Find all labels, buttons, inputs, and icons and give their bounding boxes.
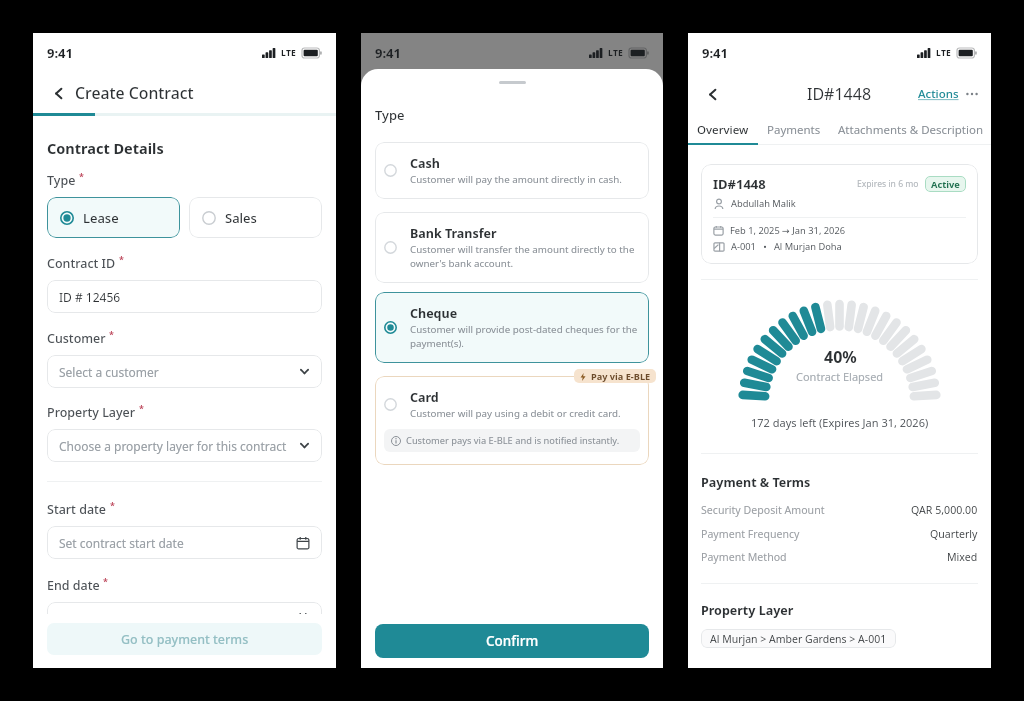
staticText: *: [109, 328, 114, 340]
staticText: *: [119, 253, 124, 265]
staticText: Property Layer: [701, 602, 794, 619]
staticText: 40%: [824, 346, 857, 368]
staticText: Payment & Terms: [701, 474, 811, 491]
staticText: Al Murjan > Amber Gardens > A-001: [710, 632, 887, 646]
button[interactable]: Choose a property layer for this contrac…: [47, 429, 322, 462]
button[interactable]: Actions: [917, 86, 960, 102]
staticText: Active: [931, 178, 960, 191]
staticText: Card: [410, 389, 439, 406]
staticText: 9:41: [702, 44, 728, 62]
staticText: Customer pays via E-BLE and is notified …: [406, 434, 620, 447]
staticText: Expires in 6 mo: [857, 178, 919, 190]
staticText: Set contract start date: [59, 535, 184, 551]
button[interactable]: Go to payment terms: [47, 623, 322, 655]
staticText: ID # 12456: [59, 289, 121, 305]
staticText: Sales: [225, 209, 257, 227]
button[interactable]: Payments: [758, 114, 830, 145]
staticText: Contract Elapsed: [796, 369, 884, 384]
staticText: Choose a property layer for this contrac…: [59, 438, 287, 454]
staticText: Customer: [47, 330, 106, 347]
staticText: Customer will pay using a debit or credi…: [410, 407, 621, 420]
button[interactable]: Al Murjan > Amber Gardens > A-001: [701, 629, 896, 648]
staticText: ID#1448: [713, 175, 766, 193]
staticText: Type: [47, 172, 76, 189]
staticText: Attachments & Description: [838, 122, 984, 138]
staticText: Payment Frequency: [701, 527, 800, 541]
staticText: Select a customer: [59, 364, 159, 380]
staticText: Feb 1, 2025 → Jan 31, 2026: [730, 224, 846, 237]
staticText: Quarterly: [930, 527, 978, 541]
staticText: *: [103, 575, 108, 587]
staticText: Create Contract: [75, 82, 194, 104]
button[interactable]: Back: [700, 82, 724, 106]
staticText: Go to payment terms: [121, 631, 249, 648]
staticText: Security Deposit Amount: [701, 503, 825, 517]
staticText: Actions: [918, 86, 959, 102]
staticText: Payment Method: [701, 550, 787, 564]
staticText: LTE: [281, 47, 297, 59]
button[interactable]: Back: [47, 82, 69, 104]
staticText: Property Layer: [47, 404, 136, 421]
staticText: LTE: [608, 47, 624, 59]
staticText: *: [79, 170, 84, 182]
button[interactable]: Confirm: [375, 624, 649, 658]
staticText: Overview: [697, 122, 749, 138]
staticText: LTE: [936, 47, 952, 59]
staticText: Customer will transfer the amount direct…: [410, 243, 640, 270]
staticText: Customer will pay the amount directly in…: [410, 173, 622, 186]
staticText: Contract Details: [47, 138, 164, 158]
staticText: Set contract end date: [59, 611, 180, 627]
button[interactable]: Bank Transfer: [375, 212, 649, 283]
staticText: A-001 • Al Murjan Doha: [731, 240, 842, 253]
staticText: Confirm: [486, 632, 539, 650]
staticText: Customer will provide post-dated cheques…: [410, 323, 640, 350]
staticText: QAR 5,000.00: [911, 503, 978, 517]
button[interactable]: Attachments & Description: [830, 114, 991, 145]
staticText: 9:41: [47, 44, 73, 62]
staticText: End date: [47, 577, 100, 594]
staticText: Mixed: [947, 550, 978, 564]
button[interactable]: Card: [375, 376, 649, 465]
button[interactable]: Set contract end date: [47, 602, 322, 635]
button[interactable]: Lease: [47, 197, 180, 238]
staticText: Abdullah Malik: [731, 197, 796, 210]
staticText: ID#1448: [807, 83, 872, 105]
button[interactable]: Sales: [189, 197, 322, 238]
staticText: Bank Transfer: [410, 225, 497, 242]
button[interactable]: Cash: [375, 142, 649, 199]
staticText: Pay via E-BLE: [591, 370, 651, 383]
staticText: Lease: [83, 209, 119, 227]
button[interactable]: ID # 12456: [47, 280, 322, 313]
button[interactable]: Select a customer: [47, 355, 322, 388]
staticText: Contract ID: [47, 255, 116, 272]
staticText: 9:41: [375, 44, 401, 62]
staticText: Cheque: [410, 305, 458, 322]
button[interactable]: More options: [965, 87, 979, 101]
button[interactable]: Cheque: [375, 292, 649, 363]
staticText: *: [110, 499, 115, 511]
button[interactable]: Set contract start date: [47, 526, 322, 559]
staticText: Type: [375, 106, 405, 124]
staticText: 172 days left (Expires Jan 31, 2026): [751, 415, 929, 430]
staticText: Cash: [410, 155, 440, 172]
staticText: Payments: [767, 122, 821, 138]
staticText: Start date: [47, 501, 107, 518]
staticText: *: [139, 402, 144, 414]
button[interactable]: Overview: [688, 114, 758, 145]
